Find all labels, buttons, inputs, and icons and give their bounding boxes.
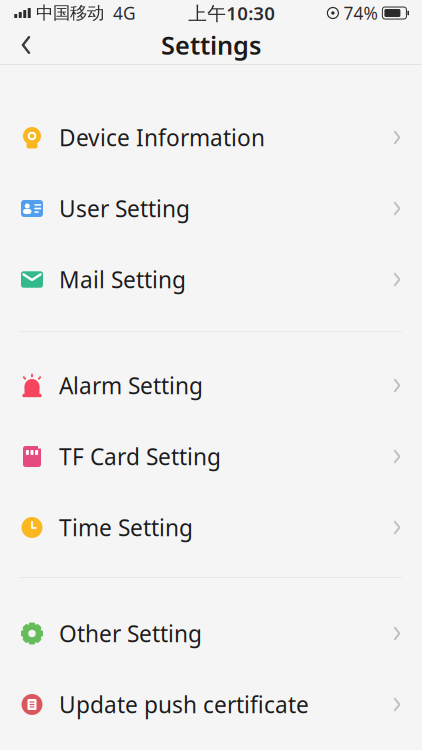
button[interactable]: Alarm Setting bbox=[0, 350, 422, 421]
staticText: Time Setting bbox=[59, 512, 193, 542]
staticText: 中国移动 bbox=[36, 2, 104, 24]
staticText: 4G bbox=[113, 1, 136, 24]
staticText: Alarm Setting bbox=[59, 370, 203, 400]
button[interactable]: Other Setting bbox=[0, 598, 422, 669]
staticText: TF Card Setting bbox=[59, 441, 221, 471]
button[interactable]: Mail Setting bbox=[0, 244, 422, 315]
button[interactable]: Back bbox=[4, 25, 48, 65]
staticText: Update push certificate bbox=[59, 689, 309, 719]
staticText: Mail Setting bbox=[59, 264, 186, 294]
staticText: 上午10:30 bbox=[188, 1, 275, 25]
button[interactable]: User Setting bbox=[0, 173, 422, 244]
button[interactable]: TF Card Setting bbox=[0, 421, 422, 492]
staticText: 74% bbox=[343, 1, 377, 24]
button[interactable]: Device Information bbox=[0, 102, 422, 173]
staticText: Other Setting bbox=[59, 618, 202, 648]
staticText: User Setting bbox=[59, 193, 190, 223]
staticText: Device Information bbox=[59, 122, 265, 152]
staticText: Settings bbox=[161, 28, 261, 62]
button[interactable]: Time Setting bbox=[0, 492, 422, 563]
button[interactable]: Update push certificate bbox=[0, 669, 422, 740]
